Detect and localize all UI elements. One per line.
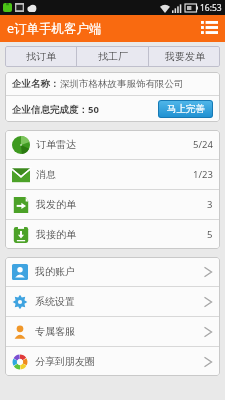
button[interactable]: 我要发单: [149, 46, 220, 67]
staticText: 1/23: [193, 168, 213, 181]
button[interactable]: 我发的单: [5, 190, 220, 219]
button[interactable]: 系统设置: [5, 287, 220, 316]
button[interactable]: 专属客服: [5, 317, 220, 346]
staticText: 5: [207, 228, 213, 241]
staticText: 深圳市格林故事服饰有限公司: [60, 78, 184, 90]
button[interactable]: 企业名称：: [5, 72, 220, 95]
staticText: 系统设置: [35, 295, 75, 308]
staticText: 3: [207, 198, 213, 211]
staticText: 订单雷达: [36, 138, 76, 151]
staticText: 我要发单: [165, 50, 205, 63]
staticText: 找工厂: [98, 50, 128, 63]
staticText: 消息: [36, 168, 56, 181]
button[interactable]: Menu: [193, 15, 225, 42]
button[interactable]: 找工厂: [77, 46, 148, 67]
staticText: e订单手机客户端: [7, 20, 102, 37]
button[interactable]: 分享到朋友圈: [5, 347, 220, 376]
staticText: 企业信息完成度：50: [12, 103, 99, 116]
button[interactable]: 消息: [5, 160, 220, 189]
staticText: 专属客服: [35, 325, 75, 338]
staticText: 我的账户: [35, 265, 75, 278]
button[interactable]: 订单雷达: [5, 130, 220, 159]
button[interactable]: 找订单: [5, 46, 76, 67]
staticText: 分享到朋友圈: [35, 355, 95, 368]
staticText: 我接的单: [36, 228, 76, 241]
button[interactable]: 我的账户: [5, 257, 220, 286]
staticText: 企业名称：: [12, 78, 60, 90]
staticText: 马上完善: [167, 103, 205, 115]
staticText: 找订单: [26, 50, 56, 63]
button[interactable]: 马上完善: [158, 100, 213, 118]
button[interactable]: 我接的单: [5, 220, 220, 249]
staticText: 5/24: [193, 138, 213, 151]
staticText: 我发的单: [36, 198, 76, 211]
staticText: 16:53: [200, 2, 222, 14]
